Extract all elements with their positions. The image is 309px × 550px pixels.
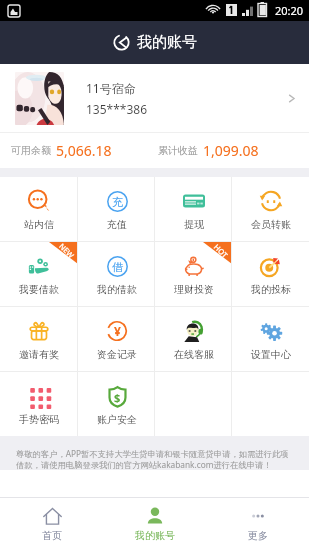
button[interactable]: 手势密码 bbox=[0, 372, 78, 436]
staticText: 135***386 bbox=[86, 101, 148, 117]
staticText: 资金记录 bbox=[97, 348, 137, 361]
button[interactable]: 借 bbox=[78, 242, 155, 306]
staticText: 首页 bbox=[42, 529, 62, 542]
button[interactable]: 充 bbox=[78, 177, 155, 241]
staticText: $ bbox=[114, 390, 121, 405]
button[interactable]: 我的账号 bbox=[103, 498, 206, 550]
staticText: 理财投资 bbox=[174, 283, 214, 296]
button[interactable]: 可用余额 bbox=[0, 133, 154, 168]
staticText: 会员转账 bbox=[251, 218, 291, 231]
staticText: 充值 bbox=[107, 218, 127, 231]
button[interactable]: 站内信 bbox=[0, 177, 78, 241]
staticText: 借 bbox=[112, 260, 123, 274]
staticText: 可用余额 bbox=[11, 144, 51, 157]
button[interactable]: 我的投标 bbox=[232, 242, 309, 306]
button[interactable]: 提现 bbox=[155, 177, 232, 241]
staticText: 提现 bbox=[184, 218, 204, 231]
button[interactable]: 更多 bbox=[206, 498, 309, 550]
staticText: 11号宿命 bbox=[86, 80, 136, 96]
staticText: 我的借款 bbox=[97, 283, 137, 296]
staticText: 累计收益 bbox=[158, 144, 198, 157]
staticText: 尊敬的客户，APP暂不支持大学生贷申请和银卡随意贷申请，如需进行此项 bbox=[16, 448, 289, 459]
staticText: 充 bbox=[112, 195, 123, 209]
staticText: 邀请有奖 bbox=[19, 348, 59, 361]
staticText: 我的账号 bbox=[135, 529, 175, 542]
button[interactable]: 首页 bbox=[0, 498, 103, 550]
staticText: 手势密码 bbox=[19, 413, 59, 426]
staticText: HOT bbox=[212, 242, 230, 260]
button[interactable]: ¥ bbox=[78, 307, 155, 371]
button[interactable]: 设置中心 bbox=[232, 307, 309, 371]
staticText: 我要借款 bbox=[19, 283, 59, 296]
button[interactable]: 我要借款 bbox=[0, 242, 78, 306]
staticText: 账户安全 bbox=[97, 413, 137, 426]
button[interactable]: 在线客服 bbox=[155, 307, 232, 371]
staticText: 设置中心 bbox=[251, 348, 291, 361]
button[interactable]: 累计收益 bbox=[154, 133, 309, 168]
staticText: NEW bbox=[57, 241, 77, 261]
staticText: 我的投标 bbox=[251, 283, 291, 296]
button[interactable]: 理财投资 bbox=[155, 242, 232, 306]
staticText: 更多 bbox=[248, 529, 268, 542]
staticText: 5,066.18 bbox=[56, 141, 112, 160]
button[interactable]: 会员转账 bbox=[232, 177, 309, 241]
button[interactable]: $ bbox=[78, 372, 155, 436]
staticText: 1,099.08 bbox=[203, 141, 259, 160]
staticText: 站内信 bbox=[24, 218, 54, 231]
button[interactable]: 邀请有奖 bbox=[0, 307, 78, 371]
staticText: 20:20 bbox=[275, 3, 304, 18]
staticText: 我的账号 bbox=[137, 33, 197, 52]
staticText: 在线客服 bbox=[174, 348, 214, 361]
staticText: ¥ bbox=[114, 323, 121, 339]
button[interactable]: 11号宿命 bbox=[0, 64, 309, 132]
staticText: 借款，请使用电脑登录我们的官方网站kakabank.com进行在线申请！ bbox=[16, 459, 272, 470]
